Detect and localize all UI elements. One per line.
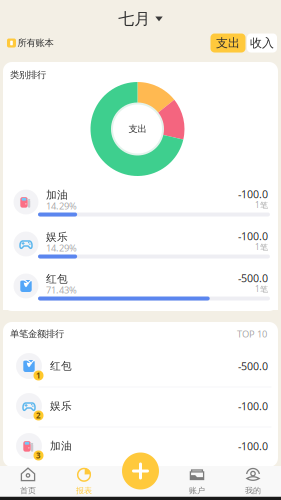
staticText: 71.43%: [46, 284, 77, 296]
staticText: 支出: [216, 36, 240, 50]
staticText: 单笔金额排行: [10, 328, 64, 340]
staticText: 1: [36, 370, 41, 381]
button[interactable]: 收入: [247, 33, 277, 52]
staticText: 红包: [46, 272, 68, 285]
staticText: 1笔: [255, 242, 268, 252]
staticText: 红包: [50, 359, 72, 372]
staticText: -500.0: [238, 271, 268, 285]
staticText: 类别排行: [10, 69, 46, 81]
staticText: 娱乐: [46, 230, 68, 243]
staticText: 支出: [128, 123, 146, 135]
staticText: -100.0: [238, 439, 268, 453]
staticText: -500.0: [238, 359, 268, 373]
staticText: 加油: [50, 439, 72, 452]
button[interactable]: 报表: [59, 466, 109, 496]
staticText: -100.0: [238, 187, 268, 201]
staticText: 我的: [245, 486, 261, 495]
button[interactable]: 七月: [105, 8, 175, 30]
button[interactable]: 所有账本: [7, 35, 59, 51]
button[interactable]: 加油: [3, 184, 278, 226]
staticText: 14.29%: [46, 242, 77, 254]
button[interactable]: 1: [3, 347, 278, 387]
staticText: 所有账本: [17, 37, 53, 49]
staticText: 娱乐: [50, 399, 72, 412]
staticText: 收入: [250, 36, 274, 50]
staticText: 七月: [118, 9, 150, 29]
button[interactable]: 我的: [228, 466, 278, 496]
staticText: 3: [36, 450, 41, 461]
staticText: 报表: [76, 486, 92, 495]
staticText: 账户: [189, 486, 205, 495]
button[interactable]: 娱乐: [3, 226, 278, 268]
staticText: 首页: [20, 486, 36, 495]
staticText: TOP 10: [237, 328, 267, 340]
staticText: 1笔: [255, 284, 268, 294]
button[interactable]: 3: [3, 427, 278, 467]
button[interactable]: 红包: [3, 268, 278, 310]
button[interactable]: 2: [3, 387, 278, 427]
button[interactable]: 首页: [3, 466, 53, 496]
button[interactable]: Add transaction: [122, 452, 159, 489]
button[interactable]: 账户: [172, 466, 222, 496]
staticText: 加油: [46, 188, 68, 201]
staticText: 2: [36, 410, 41, 421]
staticText: -100.0: [238, 229, 268, 243]
staticText: 1笔: [255, 200, 268, 210]
staticText: -100.0: [238, 399, 268, 413]
button[interactable]: 支出: [210, 33, 245, 52]
staticText: 14.29%: [46, 200, 77, 212]
